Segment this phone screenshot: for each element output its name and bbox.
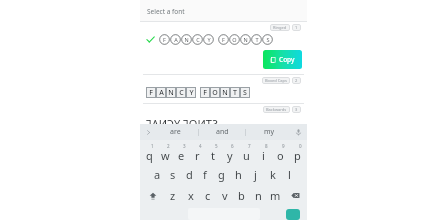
button[interactable]: and <box>199 124 245 140</box>
staticText: F <box>203 88 207 98</box>
staticText: 4 <box>199 143 202 149</box>
button[interactable]: 1 <box>295 25 298 30</box>
staticText: 7 <box>248 143 251 149</box>
staticText: p <box>294 148 301 163</box>
button[interactable]: 6 <box>221 143 238 161</box>
staticText: x <box>188 188 194 203</box>
button[interactable]: Enter <box>286 209 300 220</box>
staticText: y <box>227 148 233 163</box>
staticText: t <box>211 148 215 163</box>
button[interactable]: Ringed <box>140 22 307 75</box>
staticText: b <box>238 188 245 203</box>
staticText: r <box>195 148 200 163</box>
staticText: 8 <box>265 143 268 149</box>
button[interactable]: a <box>149 167 165 182</box>
staticText: 3 <box>295 107 298 112</box>
staticText: w <box>161 148 170 163</box>
staticText: c <box>205 188 211 203</box>
button[interactable]: 0 <box>289 143 306 161</box>
button[interactable]: Boxed Caps <box>265 78 287 83</box>
staticText: C <box>179 88 184 98</box>
staticText: 2 <box>167 143 170 149</box>
staticText: i <box>262 148 265 163</box>
other: Selected <box>146 35 155 44</box>
staticText: S <box>243 88 247 98</box>
staticText: ꟻAИƆY ꟻOИTƧ <box>146 116 218 131</box>
staticText: k <box>270 167 276 182</box>
staticText: o <box>277 148 284 163</box>
staticText: A <box>174 36 178 43</box>
button[interactable]: 4 <box>189 143 205 161</box>
button[interactable]: Boxed Caps <box>140 75 307 104</box>
staticText: j <box>254 167 257 182</box>
staticText: N <box>243 36 248 43</box>
staticText: 6 <box>231 143 234 149</box>
staticText: g <box>218 167 225 182</box>
staticText: A <box>159 88 164 98</box>
button[interactable]: 5 <box>205 143 221 161</box>
button[interactable]: j <box>247 167 264 182</box>
staticText: Backwards <box>266 107 287 112</box>
button[interactable]: 2 <box>157 143 173 161</box>
staticText: v <box>222 188 228 203</box>
staticText: Y <box>207 36 211 43</box>
button[interactable]: k <box>264 167 281 182</box>
staticText: 3 <box>183 143 186 149</box>
button[interactable]: f <box>197 167 213 182</box>
staticText: 1 <box>151 143 154 149</box>
staticText: e <box>178 148 185 163</box>
button[interactable]: 2 <box>295 78 298 83</box>
button[interactable]: g <box>213 167 230 182</box>
button[interactable]: Expand suggestions <box>143 127 153 137</box>
button[interactable]: h <box>230 167 247 182</box>
staticText: 5 <box>215 143 218 149</box>
button[interactable]: 3 <box>295 107 298 112</box>
button[interactable]: Delete <box>284 188 306 203</box>
button[interactable]: Copy <box>263 50 302 69</box>
button[interactable]: v <box>216 188 233 203</box>
staticText: T <box>233 88 237 98</box>
staticText: Copy <box>279 55 295 64</box>
button[interactable]: s <box>165 167 181 182</box>
staticText: a <box>154 167 161 182</box>
staticText: 9 <box>282 143 285 149</box>
staticText: 0 <box>299 143 302 149</box>
staticText: Select a font <box>147 7 185 16</box>
button[interactable]: 3 <box>173 143 189 161</box>
button[interactable]: Voice input <box>292 126 304 138</box>
button[interactable]: Shift <box>141 188 164 203</box>
button[interactable]: d <box>181 167 197 182</box>
button[interactable]: my <box>246 124 292 140</box>
button[interactable]: are <box>153 124 198 140</box>
button[interactable]: n <box>250 188 267 203</box>
button[interactable]: c <box>199 188 216 203</box>
staticText: T <box>255 36 259 43</box>
staticText: N <box>222 88 228 98</box>
staticText: O <box>232 36 237 43</box>
button[interactable]: 8 <box>255 143 272 161</box>
staticText: F <box>163 36 166 43</box>
button[interactable]: m <box>267 188 284 203</box>
button[interactable]: Backwards <box>266 107 287 112</box>
staticText: 2 <box>295 78 298 83</box>
staticText: Ringed <box>273 25 287 30</box>
staticText: d <box>186 167 193 182</box>
staticText: u <box>243 148 250 163</box>
button[interactable]: Ringed <box>273 25 287 30</box>
button[interactable]: 1 <box>141 143 157 161</box>
button[interactable]: l <box>281 167 298 182</box>
staticText: s <box>170 167 176 182</box>
button[interactable]: Backwards <box>140 104 307 137</box>
staticText: and <box>216 127 229 137</box>
staticText: S <box>266 36 270 43</box>
button[interactable]: x <box>182 188 199 203</box>
button[interactable]: 9 <box>272 143 289 161</box>
button[interactable]: z <box>164 188 182 203</box>
staticText: N <box>168 88 174 98</box>
button[interactable]: 7 <box>238 143 255 161</box>
button[interactable]: b <box>233 188 250 203</box>
